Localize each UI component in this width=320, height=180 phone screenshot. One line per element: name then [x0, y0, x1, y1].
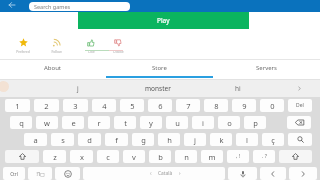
staticText: Prefered [16, 49, 30, 54]
staticText: 5 [130, 101, 135, 111]
button[interactable]: Play [78, 12, 249, 29]
button[interactable]: d [78, 133, 101, 146]
button[interactable]: Del [288, 99, 312, 112]
staticText: t [124, 118, 127, 128]
button[interactable]: 1 [5, 99, 30, 112]
staticText: i [202, 118, 204, 128]
button[interactable]: 0 [260, 99, 284, 112]
button[interactable]: i [192, 116, 214, 129]
button[interactable]: 6 [148, 99, 172, 112]
button[interactable]: j [38, 80, 118, 97]
button[interactable]: Cursor left [260, 167, 286, 180]
staticText: e [71, 118, 76, 128]
staticText: 6 [158, 101, 163, 111]
staticText: d [87, 135, 92, 145]
button[interactable]: ‹ [83, 167, 225, 180]
staticText: 2 [44, 101, 49, 111]
staticText: s [61, 135, 65, 145]
staticText: ç [271, 135, 275, 145]
button[interactable]: e [62, 116, 84, 129]
button[interactable]: Back [6, 0, 18, 12]
button[interactable]: p [244, 116, 266, 129]
button[interactable]: t [114, 116, 136, 129]
staticText: x [80, 152, 84, 162]
button[interactable]: 2 [34, 99, 59, 112]
button[interactable]: ç [262, 133, 284, 146]
staticText: f [115, 135, 118, 145]
button[interactable]: Dislike [104, 39, 132, 54]
button[interactable]: u [166, 116, 188, 129]
staticText: 1 [15, 101, 20, 111]
staticText: Ctrl [10, 171, 18, 177]
staticText: p [253, 118, 258, 128]
button[interactable]: o [218, 116, 240, 129]
staticText: o [227, 118, 232, 128]
button[interactable]: More suggestions [278, 80, 320, 97]
staticText: , ! [236, 153, 240, 160]
button[interactable]: l [236, 133, 258, 146]
button[interactable]: Voice input [228, 167, 257, 180]
staticText: h [167, 135, 172, 145]
staticText: y [149, 118, 153, 128]
button[interactable]: Like [77, 39, 105, 54]
button[interactable]: v [123, 150, 145, 163]
button[interactable]: About [0, 59, 106, 78]
button[interactable]: n [175, 150, 197, 163]
button[interactable]: 7 [176, 99, 200, 112]
button[interactable]: Follow [42, 38, 70, 54]
staticText: Català [158, 170, 173, 177]
button[interactable]: Search games [29, 2, 130, 11]
button[interactable]: , ! [227, 150, 249, 163]
button[interactable]: x [70, 150, 93, 163]
button[interactable]: Servers [213, 59, 320, 78]
button[interactable]: w [36, 116, 58, 129]
button[interactable]: Search [288, 133, 312, 146]
button[interactable]: !1□ [28, 167, 52, 180]
button[interactable]: 4 [92, 99, 116, 112]
button[interactable]: q [10, 116, 32, 129]
button[interactable]: . ? [253, 150, 275, 163]
button[interactable]: k [210, 133, 232, 146]
staticText: About [44, 64, 62, 72]
button[interactable]: a [24, 133, 47, 146]
button[interactable]: c [97, 150, 119, 163]
button[interactable]: z [43, 150, 66, 163]
button[interactable]: Ctrl [3, 167, 25, 180]
staticText: 8 [214, 101, 219, 111]
button[interactable]: h [158, 133, 180, 146]
button[interactable]: f [105, 133, 128, 146]
button[interactable]: monster [118, 80, 198, 97]
button[interactable]: Store [106, 59, 213, 78]
button[interactable]: Shift [5, 150, 39, 163]
button[interactable]: Cursor right [289, 167, 317, 180]
button[interactable]: 9 [232, 99, 256, 112]
staticText: q [19, 118, 24, 128]
staticText: Dislike [113, 49, 124, 54]
button[interactable]: m [201, 150, 223, 163]
button[interactable]: g [132, 133, 154, 146]
button[interactable]: Prefered [9, 38, 37, 54]
button[interactable]: hi [198, 80, 278, 97]
button[interactable]: Shift [279, 150, 312, 163]
button[interactable]: r [88, 116, 110, 129]
staticText: j [194, 135, 196, 145]
staticText: 7 [186, 101, 191, 111]
button[interactable]: 8 [204, 99, 228, 112]
staticText: c [106, 152, 110, 162]
button[interactable]: y [140, 116, 162, 129]
staticText: m [208, 152, 216, 162]
staticText: Search games [34, 3, 71, 10]
button[interactable]: Emoji [55, 167, 80, 180]
button[interactable]: 3 [63, 99, 88, 112]
staticText: hi [235, 84, 241, 93]
staticText: 0 [270, 101, 275, 111]
button[interactable]: b [149, 150, 171, 163]
button[interactable]: Backspace [287, 116, 311, 129]
button[interactable]: s [51, 133, 74, 146]
button[interactable]: j [184, 133, 206, 146]
staticText: monster [145, 84, 171, 93]
staticText: v [132, 152, 136, 162]
button[interactable]: 5 [120, 99, 144, 112]
staticText: Follow [51, 49, 62, 54]
staticText: a [33, 135, 38, 145]
